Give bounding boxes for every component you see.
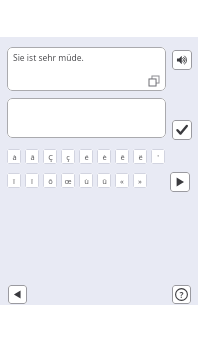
- staticText: œ: [64, 176, 72, 186]
- staticText: Sie ist sehr müde.: [13, 52, 84, 64]
- button[interactable]: ù: [79, 173, 93, 188]
- button[interactable]: Sie ist sehr müde.: [7, 47, 166, 91]
- staticText: ë: [138, 152, 143, 162]
- button[interactable]: è: [97, 149, 111, 164]
- button[interactable]: é: [79, 149, 93, 164]
- staticText: ù: [84, 176, 89, 186]
- staticText: î: [13, 176, 15, 186]
- staticText: ?: [179, 289, 184, 301]
- staticText: ê: [120, 152, 125, 162]
- button[interactable]: Back: [8, 285, 27, 304]
- button[interactable]: â: [25, 149, 39, 164]
- button[interactable]: à: [7, 149, 21, 164]
- staticText: Ç: [48, 152, 53, 162]
- button[interactable]: «: [115, 173, 129, 188]
- button[interactable]: ': [151, 149, 165, 164]
- button[interactable]: ç: [61, 149, 75, 164]
- button[interactable]: Listen: [172, 50, 192, 70]
- staticText: ç: [66, 152, 70, 162]
- button[interactable]: Next: [170, 172, 190, 192]
- button[interactable]: ë: [133, 149, 147, 164]
- button[interactable]: Copy text: [148, 75, 161, 88]
- staticText: é: [84, 152, 89, 162]
- staticText: è: [102, 152, 107, 162]
- staticText: à: [12, 152, 17, 162]
- button[interactable]: [7, 98, 166, 138]
- button[interactable]: ê: [115, 149, 129, 164]
- staticText: «: [120, 176, 124, 186]
- button[interactable]: Ç: [43, 149, 57, 164]
- staticText: â: [30, 152, 35, 162]
- button[interactable]: ô: [43, 173, 57, 188]
- button[interactable]: Check answer: [172, 120, 192, 140]
- staticText: û: [102, 176, 107, 186]
- button[interactable]: »: [133, 173, 147, 188]
- button[interactable]: ï: [25, 173, 39, 188]
- button[interactable]: Help: [172, 285, 191, 304]
- staticText: ': [157, 152, 159, 162]
- button[interactable]: û: [97, 173, 111, 188]
- staticText: ï: [31, 176, 33, 186]
- staticText: ô: [48, 176, 53, 186]
- button[interactable]: î: [7, 173, 21, 188]
- staticText: »: [138, 176, 142, 186]
- button[interactable]: œ: [61, 173, 75, 188]
